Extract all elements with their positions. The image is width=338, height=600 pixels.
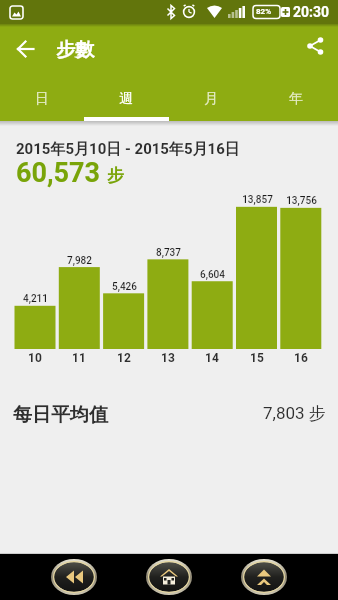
staticText: 5,426: [112, 281, 137, 293]
staticText: 步: [107, 165, 124, 186]
staticText: 日: [35, 90, 49, 108]
button[interactable]: 週: [84, 68, 168, 121]
staticText: 10: [28, 351, 42, 365]
staticText: 20:30: [293, 4, 330, 20]
staticText: 步數: [56, 38, 94, 62]
staticText: 13,857: [242, 194, 273, 206]
staticText: 年: [289, 90, 303, 108]
button[interactable]: [241, 559, 287, 595]
staticText: 82%: [256, 7, 272, 16]
button[interactable]: [294, 24, 338, 68]
button[interactable]: 日: [0, 68, 84, 121]
button[interactable]: [0, 24, 48, 68]
staticText: 4,211: [23, 293, 48, 305]
staticText: 每日平均值: [13, 403, 108, 427]
staticText: 12: [117, 351, 131, 365]
staticText: 60,573: [16, 157, 101, 189]
button[interactable]: 月: [168, 68, 253, 121]
staticText: 月: [204, 90, 218, 108]
staticText: 13: [161, 351, 175, 365]
button[interactable]: 年: [253, 68, 338, 121]
staticText: 週: [119, 90, 133, 108]
staticText: 16: [294, 351, 308, 365]
staticText: 15: [250, 351, 264, 365]
staticText: 2015年5月10日 - 2015年5月16日: [16, 140, 240, 159]
button[interactable]: [51, 559, 97, 595]
button[interactable]: [146, 559, 192, 595]
staticText: 7,803 步: [263, 403, 326, 424]
staticText: 13,756: [286, 195, 317, 207]
staticText: 11: [72, 351, 86, 365]
staticText: 6,604: [200, 269, 225, 281]
staticText: 7,982: [67, 255, 92, 267]
staticText: 14: [205, 351, 219, 365]
staticText: 8,737: [156, 247, 181, 259]
